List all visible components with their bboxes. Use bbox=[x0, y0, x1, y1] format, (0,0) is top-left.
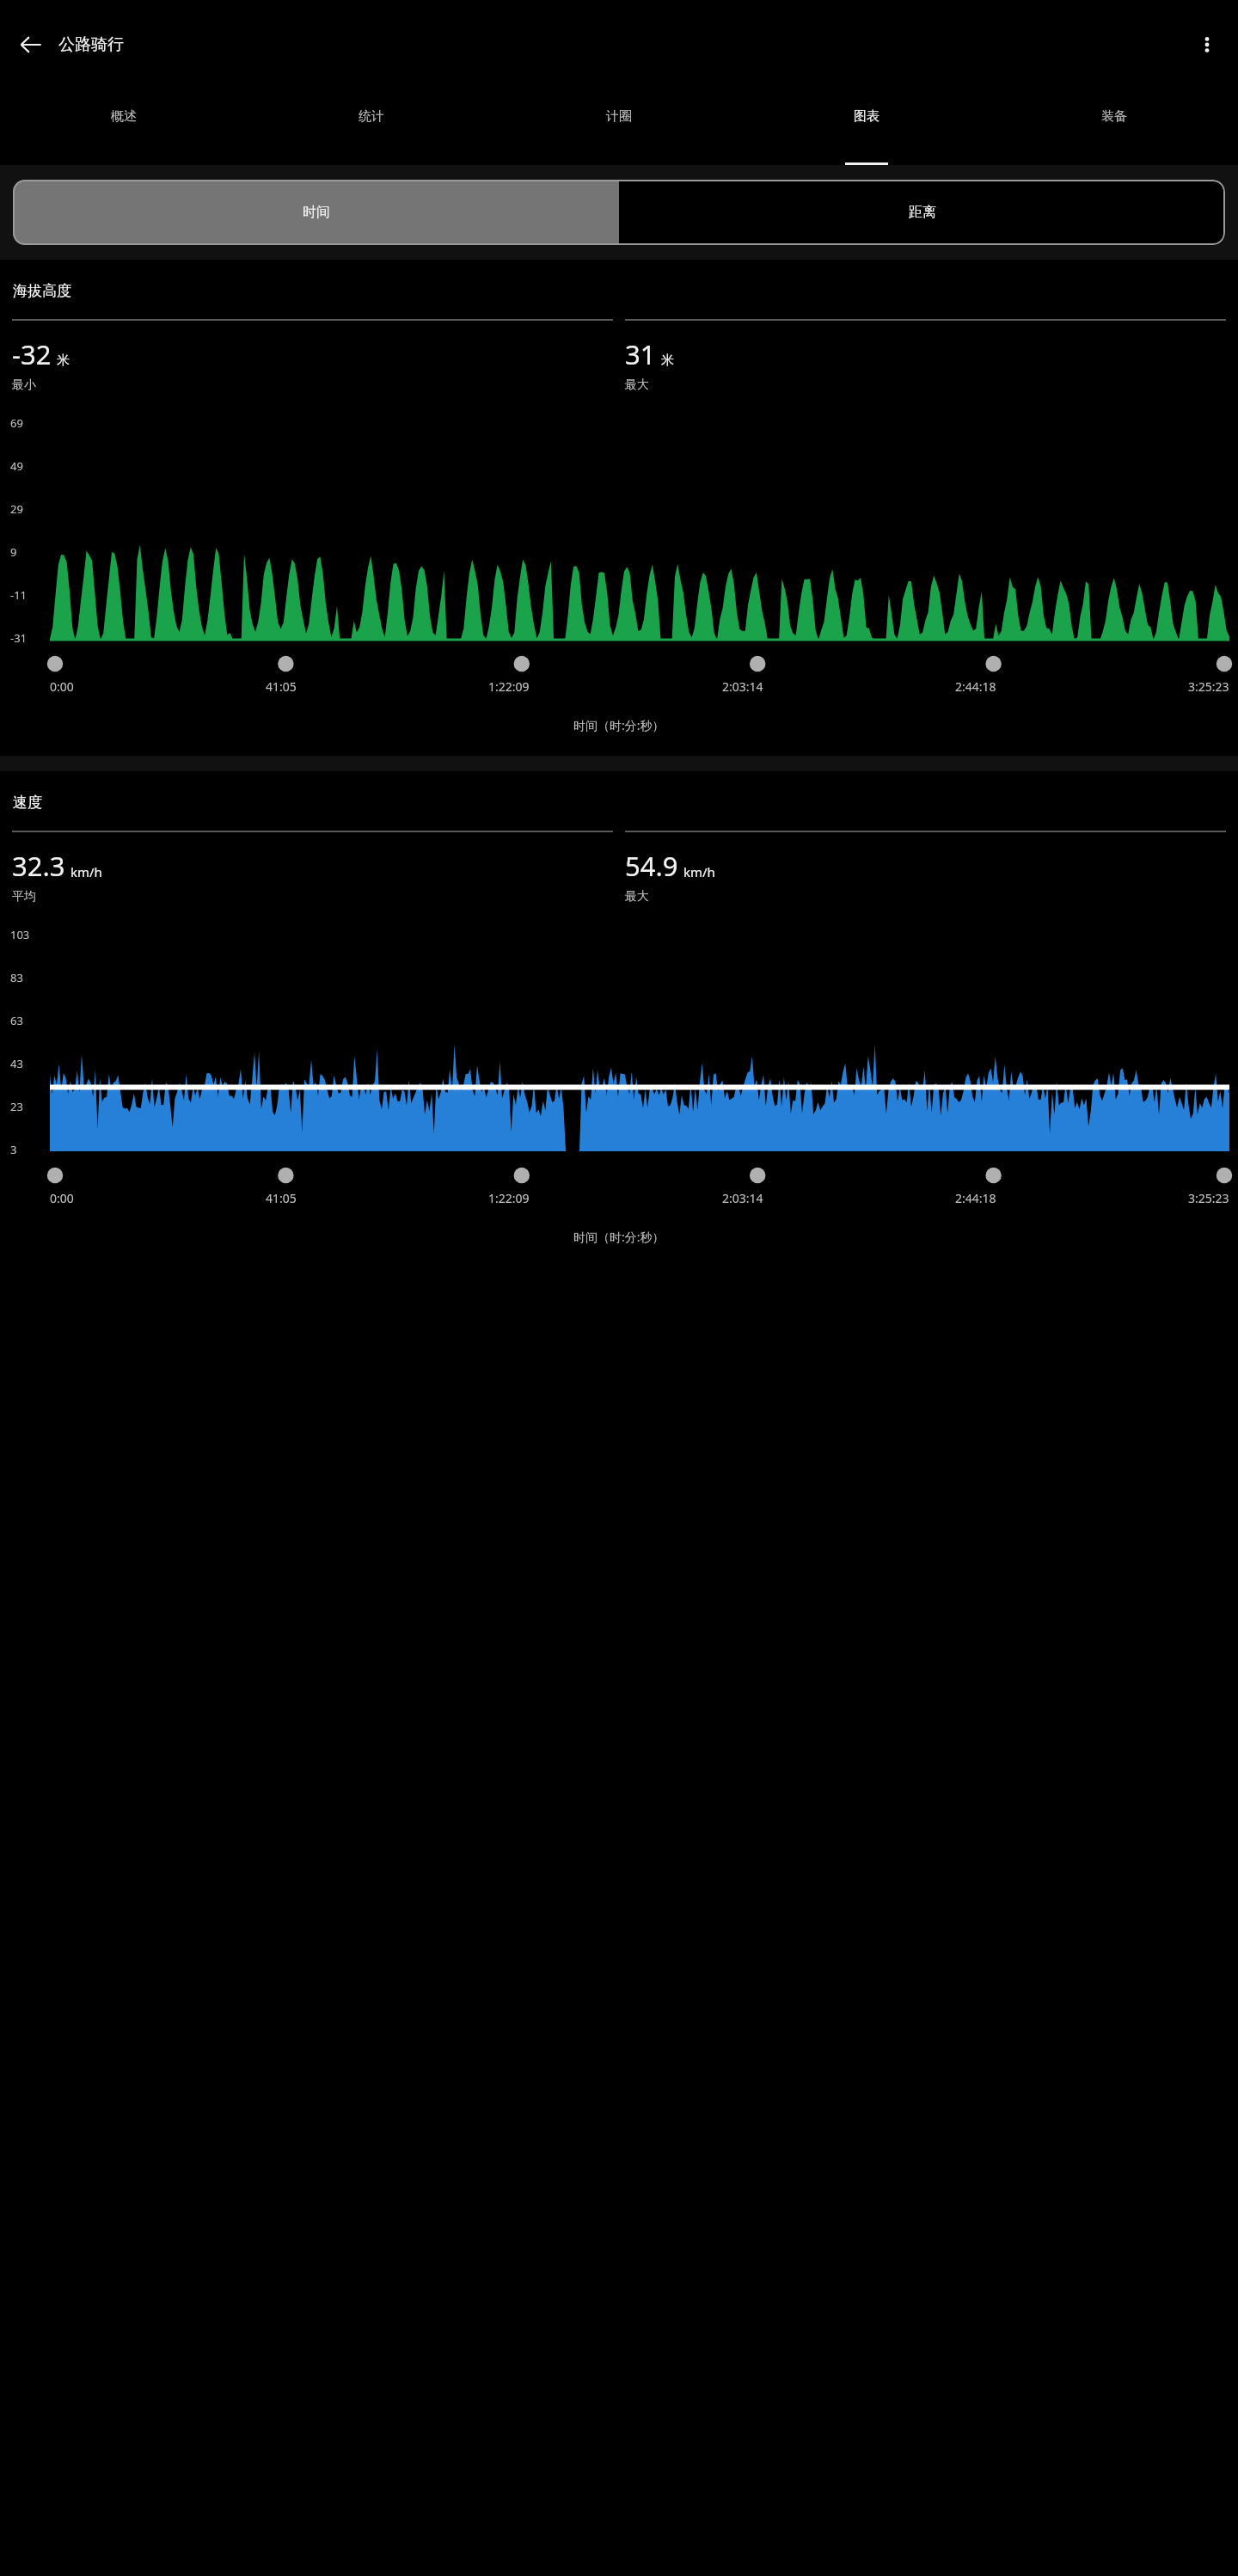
button[interactable]: 装备 bbox=[990, 89, 1238, 165]
staticText: 0:00 bbox=[50, 1190, 74, 1206]
staticText: 装备 bbox=[1101, 108, 1127, 125]
staticText: 83 bbox=[10, 970, 23, 985]
staticText: 2:03:14 bbox=[722, 1190, 763, 1206]
staticText: 时间（时:分:秒） bbox=[573, 1229, 665, 1245]
staticText: 41:05 bbox=[266, 1190, 297, 1206]
button[interactable]: 图表 bbox=[743, 89, 990, 165]
button[interactable]: More options bbox=[1185, 22, 1229, 67]
button[interactable]: 概述 bbox=[0, 89, 248, 165]
staticText: 1:22:09 bbox=[488, 1190, 530, 1206]
staticText: 2:44:18 bbox=[955, 1190, 996, 1206]
staticText: 63 bbox=[10, 1013, 23, 1028]
staticText: 最大 bbox=[625, 377, 649, 393]
staticText: 统计 bbox=[359, 108, 384, 125]
staticText: 29 bbox=[10, 501, 23, 517]
staticText: 0:00 bbox=[50, 678, 74, 695]
staticText: 41:05 bbox=[266, 678, 297, 695]
staticText: 速度 bbox=[13, 794, 42, 812]
staticText: 3 bbox=[10, 1142, 17, 1157]
staticText: km/h bbox=[683, 863, 715, 880]
button[interactable]: 统计 bbox=[248, 89, 495, 165]
staticText: 时间 bbox=[303, 204, 330, 221]
staticText: 43 bbox=[10, 1056, 23, 1071]
staticText: 54.9 bbox=[625, 848, 678, 884]
staticText: 2:03:14 bbox=[722, 678, 763, 695]
staticText: 最大 bbox=[625, 889, 649, 905]
staticText: 距离 bbox=[909, 204, 936, 221]
staticText: 3:25:23 bbox=[1188, 1190, 1229, 1206]
staticText: -11 bbox=[10, 587, 28, 603]
staticText: 1:22:09 bbox=[488, 678, 530, 695]
staticText: 平均 bbox=[12, 889, 36, 905]
staticText: 3:25:23 bbox=[1188, 678, 1229, 695]
staticText: 69 bbox=[10, 415, 23, 431]
staticText: 23 bbox=[10, 1099, 23, 1114]
staticText: 图表 bbox=[854, 108, 879, 125]
staticText: km/h bbox=[70, 863, 102, 880]
staticText: 计圈 bbox=[606, 108, 632, 125]
staticText: 时间（时:分:秒） bbox=[573, 717, 665, 733]
staticText: 最小 bbox=[12, 377, 36, 393]
staticText: -31 bbox=[10, 630, 28, 646]
button[interactable]: 时间 bbox=[13, 180, 619, 245]
staticText: 概述 bbox=[111, 108, 137, 125]
staticText: 2:44:18 bbox=[955, 678, 996, 695]
staticText: -32 bbox=[12, 336, 52, 372]
staticText: 103 bbox=[10, 927, 30, 942]
staticText: 公路骑行 bbox=[58, 34, 124, 55]
staticText: 海拔高度 bbox=[13, 282, 71, 300]
button[interactable]: 计圈 bbox=[495, 89, 743, 165]
button[interactable]: 距离 bbox=[619, 180, 1225, 245]
staticText: 米 bbox=[57, 353, 70, 369]
staticText: 49 bbox=[10, 458, 23, 474]
staticText: 9 bbox=[10, 544, 17, 560]
staticText: 米 bbox=[661, 353, 674, 369]
staticText: 32.3 bbox=[12, 848, 65, 884]
button[interactable]: Back bbox=[7, 21, 55, 69]
staticText: 31 bbox=[625, 336, 656, 372]
